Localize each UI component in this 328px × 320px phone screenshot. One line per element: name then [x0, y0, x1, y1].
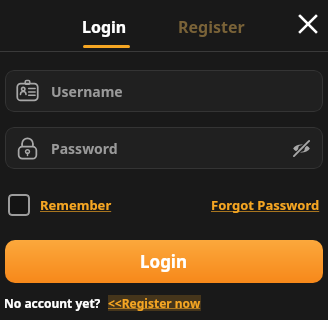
button[interactable]: Show password	[289, 136, 313, 160]
button[interactable]: Password	[5, 127, 323, 169]
button[interactable]: Username	[5, 70, 323, 112]
button[interactable]: Register	[172, 14, 251, 40]
staticText: Remember	[40, 196, 112, 214]
button[interactable]: Forgot Password	[211, 196, 320, 214]
staticText: Username	[51, 82, 123, 101]
staticText: Forgot Password	[211, 196, 320, 214]
staticText: Login	[82, 16, 127, 38]
button[interactable]: Close	[292, 8, 324, 40]
button[interactable]: Login	[5, 240, 323, 283]
button[interactable]: Remember	[8, 194, 112, 216]
button[interactable]: Login	[76, 14, 133, 40]
staticText: Login	[140, 250, 188, 273]
staticText: Password	[51, 139, 118, 158]
staticText: <<Register now	[108, 295, 201, 311]
staticText: Register	[178, 16, 245, 38]
button[interactable]: <<Register now	[108, 295, 201, 311]
staticText: No account yet?	[4, 295, 101, 311]
